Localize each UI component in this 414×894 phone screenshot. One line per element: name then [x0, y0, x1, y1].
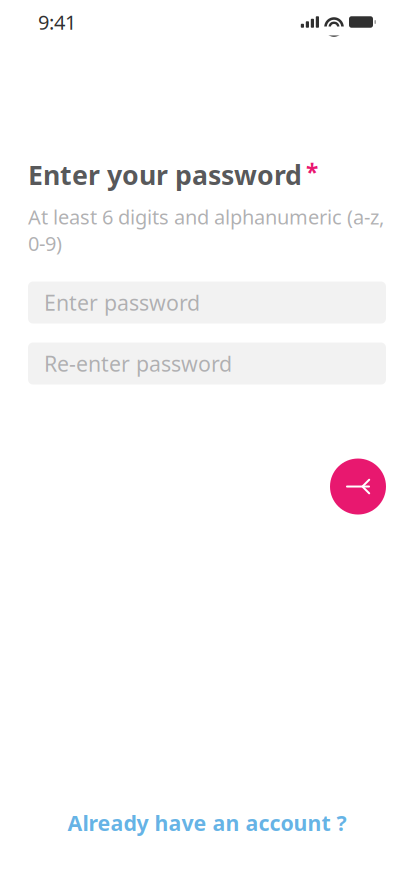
- staticText: At least 6 digits and alphanumeric (a-z,…: [28, 203, 384, 256]
- staticText: 9:41: [38, 9, 76, 35]
- staticText: Re-enter password: [44, 349, 232, 378]
- button[interactable]: Continue: [330, 458, 386, 514]
- staticText: Enter your password: [28, 157, 302, 192]
- button[interactable]: Already have an account ?: [47, 799, 366, 847]
- staticText: Already have an account ?: [67, 809, 346, 837]
- staticText: *: [306, 157, 318, 187]
- staticText: Enter password: [44, 288, 200, 317]
